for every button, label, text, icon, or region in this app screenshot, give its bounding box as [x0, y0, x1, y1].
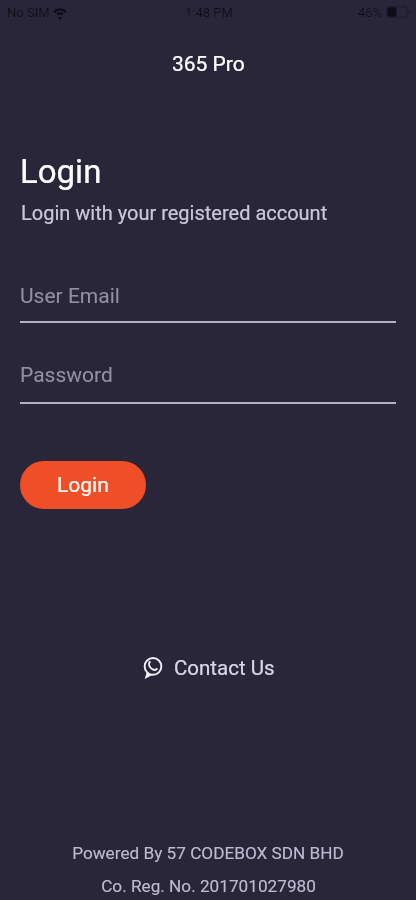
staticText: No SIM [7, 5, 50, 20]
staticText: User Email [20, 284, 120, 309]
staticText: Contact Us [174, 656, 275, 680]
staticText: Powered By 57 CODEBOX SDN BHD [72, 843, 344, 863]
staticText: 46% [358, 5, 383, 20]
staticText: Login [57, 473, 109, 498]
staticText: Co. Reg. No. 201701027980 [101, 876, 316, 896]
staticText: 365 Pro [172, 52, 245, 77]
staticText: 1:48 PM [185, 5, 233, 20]
staticText: Password [20, 363, 113, 388]
staticText: Login with your registered account [21, 201, 328, 224]
button[interactable]: Contact us on WhatsApp [1, 651, 416, 685]
other: Contact us on WhatsApp [143, 655, 163, 682]
button[interactable]: Login [20, 461, 146, 509]
staticText: Login [20, 152, 102, 191]
